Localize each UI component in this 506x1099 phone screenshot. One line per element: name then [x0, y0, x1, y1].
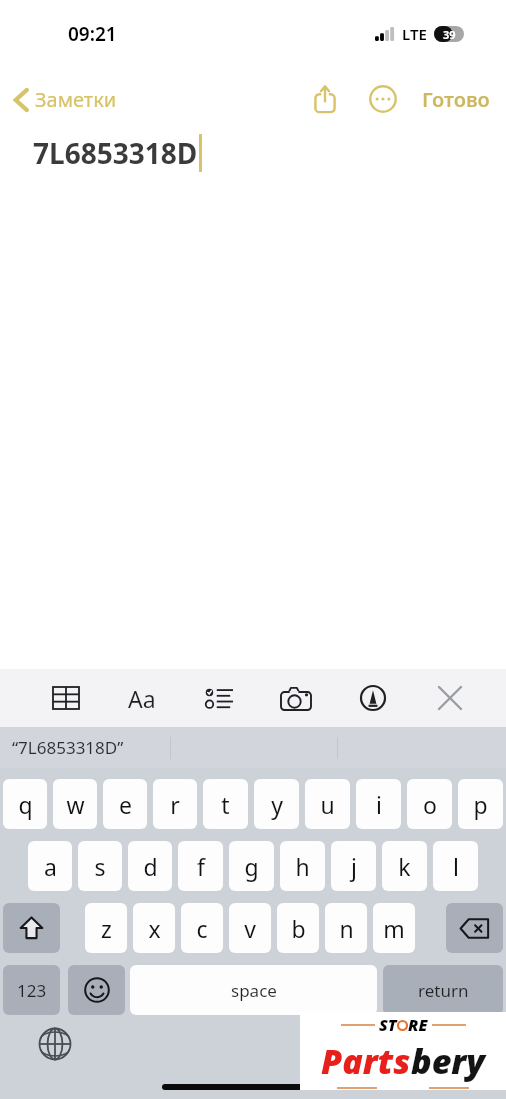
staticText: a [44, 851, 57, 882]
button[interactable]: h [280, 841, 325, 891]
button[interactable]: r [153, 779, 197, 829]
staticText: w [66, 789, 85, 820]
staticText: z [101, 913, 112, 944]
button[interactable]: d [128, 841, 172, 891]
staticText: bery [411, 1038, 485, 1084]
button[interactable]: Emoji [68, 965, 125, 1015]
button[interactable]: a [28, 841, 72, 891]
button[interactable]: m [373, 903, 415, 953]
button[interactable]: More options [360, 76, 406, 122]
staticText: j [351, 851, 357, 882]
button[interactable]: Checklist [197, 676, 241, 720]
button[interactable]: x [133, 903, 175, 953]
button[interactable]: return [383, 965, 503, 1015]
button[interactable]: f [178, 841, 223, 891]
staticText: c [196, 913, 208, 944]
button[interactable]: n [325, 903, 367, 953]
staticText: t [221, 789, 230, 820]
button[interactable]: b [277, 903, 319, 953]
staticText: v [244, 913, 256, 944]
staticText: y [271, 789, 283, 820]
staticText: ST [379, 1014, 397, 1036]
button[interactable]: w [53, 779, 97, 829]
staticText: i [376, 789, 382, 820]
button[interactable]: t [203, 779, 248, 829]
button[interactable]: g [229, 841, 274, 891]
staticText: 39 [443, 27, 456, 42]
staticText: d [143, 851, 158, 882]
staticText: l [453, 851, 459, 882]
button[interactable]: y [254, 779, 299, 829]
button[interactable]: u [305, 779, 350, 829]
staticText: Aa [128, 683, 156, 714]
button[interactable]: Shift [3, 903, 60, 953]
button[interactable]: Markup [351, 676, 395, 720]
staticText: p [473, 789, 488, 820]
staticText: 123 [17, 979, 47, 1002]
button[interactable]: space [130, 965, 377, 1015]
staticText: LTE [402, 24, 427, 44]
staticText: e [119, 789, 132, 820]
staticText: Готово [422, 86, 490, 113]
staticText: g [244, 851, 259, 882]
staticText: Parts [321, 1038, 411, 1084]
staticText: n [339, 913, 354, 944]
button[interactable]: Table [44, 676, 88, 720]
staticText: m [383, 913, 405, 944]
staticText: return [418, 979, 469, 1002]
button[interactable]: Готово [414, 78, 498, 121]
button[interactable]: p [458, 779, 503, 829]
staticText: s [94, 851, 106, 882]
button[interactable]: Заметки [10, 80, 121, 119]
button[interactable]: v [229, 903, 271, 953]
button[interactable]: “7L6853318D” [0, 727, 170, 768]
staticText: RE [408, 1014, 428, 1036]
button[interactable]: Camera [274, 676, 318, 720]
button[interactable]: c [181, 903, 223, 953]
button[interactable]: l [433, 841, 478, 891]
staticText: u [320, 789, 335, 820]
staticText: b [291, 913, 306, 944]
button[interactable]: Close keyboard [428, 676, 472, 720]
button[interactable]: j [331, 841, 376, 891]
staticText: 09:21 [68, 21, 117, 47]
staticText: space [231, 979, 277, 1002]
staticText: o [423, 789, 437, 820]
button[interactable]: k [382, 841, 427, 891]
button[interactable]: e [103, 779, 147, 829]
staticText: r [170, 789, 180, 820]
staticText: Заметки [35, 86, 117, 113]
button[interactable]: Share [302, 76, 348, 122]
button[interactable]: Backspace [446, 903, 503, 953]
button[interactable]: Switch keyboard [36, 1025, 74, 1063]
button[interactable]: 123 [3, 965, 60, 1015]
button[interactable]: Text format [120, 676, 164, 720]
staticText: q [18, 789, 33, 820]
staticText: “7L6853318D” [12, 736, 124, 759]
staticText: 7L6853318D [33, 134, 198, 172]
staticText: f [197, 851, 205, 882]
button[interactable]: o [407, 779, 452, 829]
staticText: h [295, 851, 310, 882]
button[interactable]: s [78, 841, 122, 891]
button[interactable]: z [85, 903, 127, 953]
staticText: k [398, 851, 411, 882]
button[interactable]: q [3, 779, 47, 829]
staticText: x [148, 913, 161, 944]
button[interactable]: i [356, 779, 401, 829]
